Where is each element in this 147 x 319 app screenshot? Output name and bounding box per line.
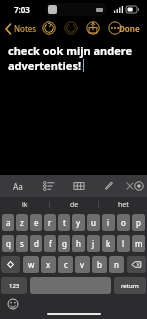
- button[interactable]: l: [117, 235, 130, 252]
- button[interactable]: Backspace: [127, 256, 146, 273]
- button[interactable]: r: [44, 214, 56, 231]
- button[interactable]: Table: [72, 179, 86, 193]
- staticText: r: [48, 217, 52, 228]
- button[interactable]: h: [72, 235, 85, 252]
- button[interactable]: de: [50, 197, 98, 212]
- button[interactable]: g: [58, 235, 70, 252]
- button[interactable]: v: [75, 256, 90, 273]
- staticText: k: [106, 238, 111, 249]
- button[interactable]: ik: [0, 197, 49, 212]
- staticText: h: [76, 238, 81, 249]
- staticText: e: [34, 217, 39, 228]
- button[interactable]: c: [58, 256, 73, 273]
- button[interactable]: x: [41, 256, 56, 273]
- button[interactable]: n: [109, 256, 124, 273]
- button[interactable]: More: [108, 21, 122, 35]
- staticText: y: [76, 217, 81, 228]
- button[interactable]: Share: [86, 21, 100, 35]
- staticText: Notes: [14, 23, 37, 34]
- button[interactable]: Text format: [10, 178, 26, 194]
- button[interactable]: Redo: [64, 21, 78, 35]
- button[interactable]: d: [30, 235, 42, 252]
- staticText: j: [92, 238, 95, 249]
- button[interactable]: Notes: [0, 21, 42, 36]
- button[interactable]: m: [132, 235, 145, 252]
- button[interactable]: q: [2, 235, 14, 252]
- staticText: de: [70, 200, 79, 210]
- button[interactable]: k: [102, 235, 115, 252]
- staticText: w: [28, 259, 35, 270]
- staticText: b: [97, 259, 102, 270]
- button[interactable]: Attach: [102, 179, 116, 193]
- button[interactable]: y: [72, 214, 85, 231]
- staticText: ik: [22, 200, 28, 210]
- button[interactable]: i: [102, 214, 115, 231]
- button[interactable]: u: [87, 214, 100, 231]
- button[interactable]: a: [2, 214, 14, 231]
- staticText: d: [34, 238, 39, 249]
- staticText: g: [62, 238, 67, 249]
- button[interactable]: z: [16, 214, 28, 231]
- staticText: z: [20, 217, 24, 228]
- button[interactable]: p: [132, 214, 145, 231]
- button[interactable]: Checklist: [42, 179, 56, 193]
- button[interactable]: j: [87, 235, 100, 252]
- staticText: q: [6, 238, 11, 249]
- button[interactable]: f: [44, 235, 56, 252]
- button[interactable]: s: [16, 235, 28, 252]
- staticText: 7:03: [14, 4, 30, 15]
- staticText: s: [20, 238, 24, 249]
- button[interactable]: [30, 277, 111, 294]
- button[interactable]: o: [117, 214, 130, 231]
- button[interactable]: b: [92, 256, 107, 273]
- button[interactable]: w: [23, 256, 39, 273]
- staticText: c: [64, 259, 68, 270]
- staticText: t: [63, 217, 66, 228]
- staticText: Aa: [13, 181, 23, 192]
- staticText: 123: [9, 282, 20, 290]
- staticText: u: [91, 217, 96, 228]
- button[interactable]: t: [58, 214, 70, 231]
- button[interactable]: e: [30, 214, 42, 231]
- staticText: f: [49, 238, 52, 249]
- staticText: v: [80, 259, 85, 270]
- staticText: p: [136, 217, 141, 228]
- staticText: het: [118, 200, 129, 210]
- button[interactable]: Camera: [132, 179, 146, 193]
- staticText: a: [6, 217, 11, 228]
- staticText: o: [121, 217, 126, 228]
- button[interactable]: return: [114, 277, 146, 294]
- staticText: i: [107, 217, 110, 228]
- staticText: n: [114, 259, 119, 270]
- button[interactable]: Done: [112, 21, 147, 36]
- button[interactable]: Undo: [42, 21, 56, 35]
- staticText: x: [46, 259, 51, 270]
- staticText: check ook mijn andere: [8, 43, 133, 58]
- staticText: m: [135, 238, 143, 249]
- staticText: advertenties!: [8, 58, 82, 73]
- button[interactable]: Shift: [1, 256, 20, 273]
- staticText: return: [121, 282, 139, 290]
- button[interactable]: het: [99, 197, 147, 212]
- button[interactable]: Emoji: [7, 298, 19, 310]
- button[interactable]: Close: [123, 179, 137, 193]
- staticText: l: [122, 238, 125, 249]
- button[interactable]: 123: [1, 277, 27, 294]
